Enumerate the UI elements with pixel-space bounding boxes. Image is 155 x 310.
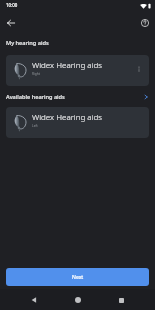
staticText: Widex Hearing aids: [32, 111, 103, 122]
staticText: My hearing aids: [6, 39, 49, 47]
button[interactable]: Help: [137, 15, 152, 30]
staticText: 10:00: [6, 2, 18, 8]
button[interactable]: Back: [3, 15, 18, 30]
staticText: Next: [72, 274, 84, 281]
staticText: Available hearing aids: [6, 93, 65, 101]
staticText: Widex Hearing aids: [32, 59, 103, 70]
staticText: Right: [32, 72, 40, 76]
button[interactable]: Widex Hearing aids: [6, 107, 149, 138]
button[interactable]: More options: [131, 61, 147, 77]
button[interactable]: Back: [25, 291, 43, 309]
button[interactable]: Home: [69, 291, 87, 309]
button[interactable]: Next: [6, 268, 149, 286]
button[interactable]: Recents: [112, 291, 130, 309]
button[interactable]: Show available hearing aids: [140, 91, 152, 103]
staticText: Left: [32, 124, 38, 128]
button[interactable]: Widex Hearing aids: [6, 55, 149, 86]
